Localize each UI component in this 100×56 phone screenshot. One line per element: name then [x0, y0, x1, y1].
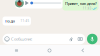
staticText: 11:45	[21, 19, 30, 23]
staticText: Сообщение	[11, 36, 32, 42]
button[interactable]: Back	[66, 45, 100, 56]
staticText: 11:43	[83, 7, 92, 10]
button[interactable]: Recent apps	[0, 45, 33, 56]
staticText: По дн	[4, 18, 14, 24]
button[interactable]: Сообщение	[2, 34, 85, 44]
button[interactable]: Record voice message	[87, 34, 97, 44]
button[interactable]: Home	[33, 45, 66, 56]
staticText: Привет, как дела?	[65, 1, 97, 6]
